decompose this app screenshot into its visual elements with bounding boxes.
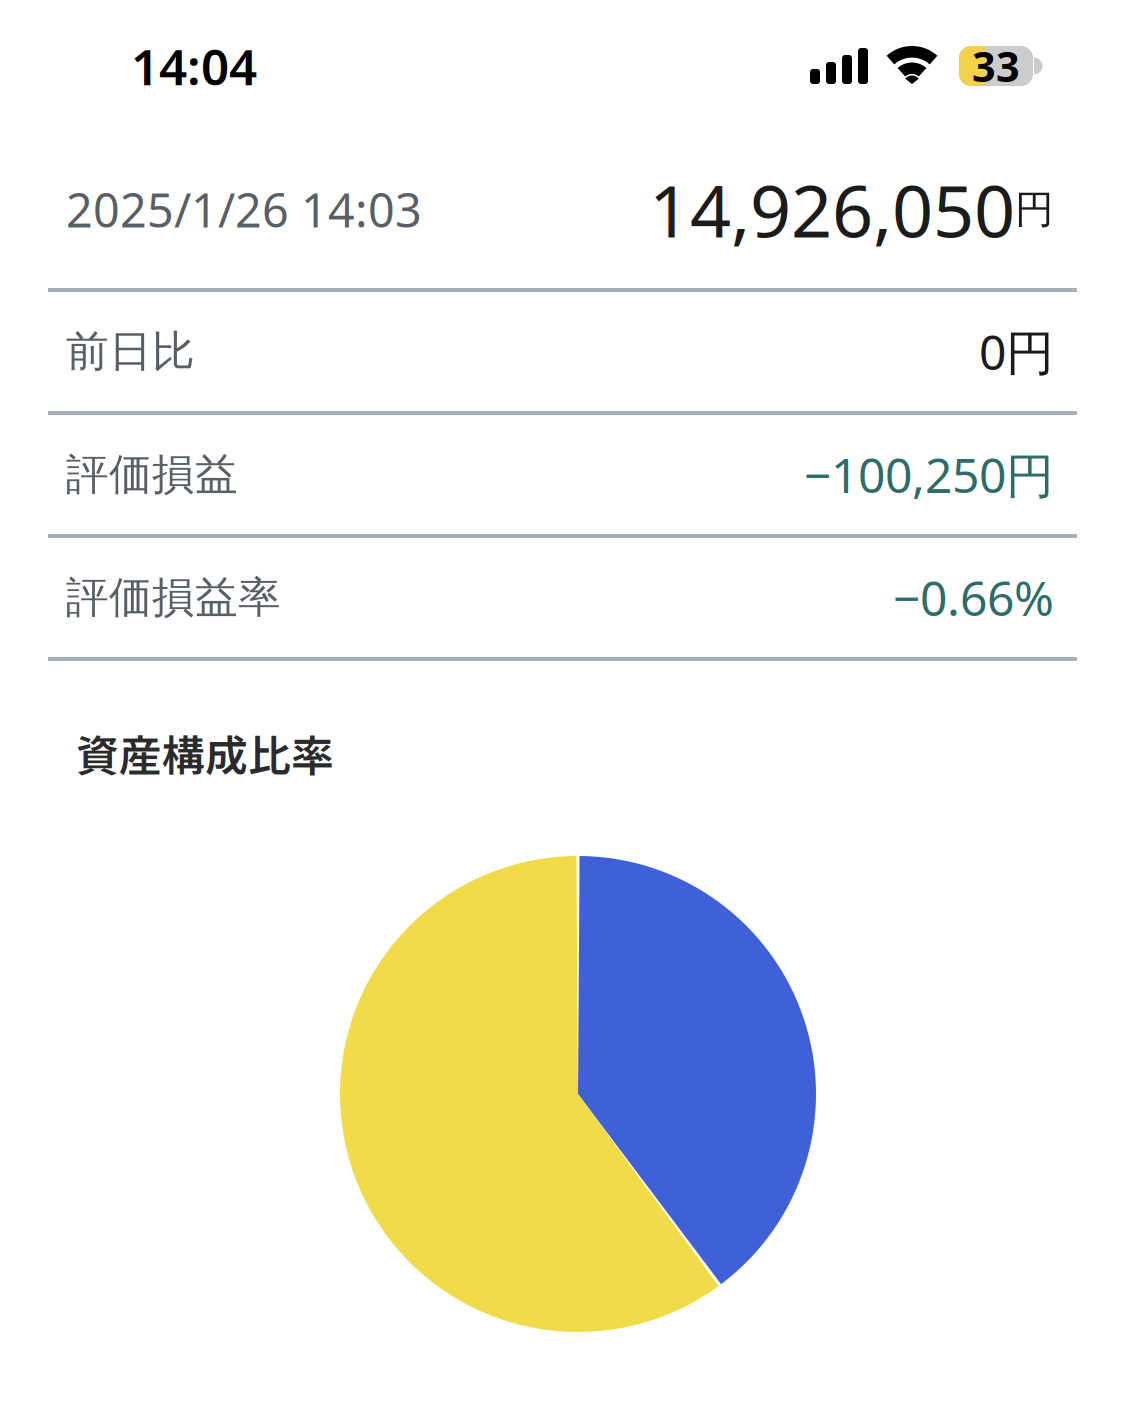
staticText: 14:04	[131, 33, 257, 99]
button[interactable]: 前日比	[0, 292, 1125, 411]
staticText: −100,250円	[804, 443, 1054, 506]
staticText: 33	[972, 39, 1020, 93]
button[interactable]: 2025/1/26 14:03	[0, 131, 1125, 288]
staticText: 評価損益率	[66, 571, 281, 624]
staticText: −0.66%	[893, 566, 1054, 629]
staticText: 2025/1/26 14:03	[66, 178, 422, 240]
staticText: 資産構成比率	[76, 722, 334, 784]
button[interactable]: 評価損益率	[0, 538, 1125, 657]
staticText: 円	[1015, 186, 1054, 233]
button[interactable]: 評価損益	[0, 415, 1125, 534]
staticText: 評価損益	[66, 448, 238, 501]
staticText: 前日比	[66, 325, 195, 378]
staticText: 14,926,050	[649, 162, 1015, 257]
staticText: 0円	[979, 320, 1054, 383]
